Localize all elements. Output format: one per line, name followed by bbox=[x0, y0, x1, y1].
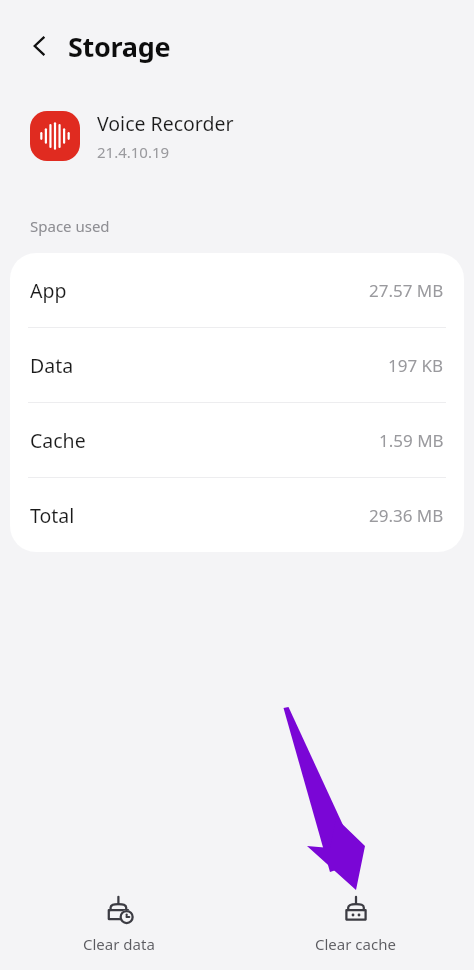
button[interactable]: Back bbox=[18, 24, 62, 68]
button[interactable]: Clear cache bbox=[237, 887, 474, 962]
staticText: Voice Recorder bbox=[97, 110, 234, 137]
button[interactable]: Total bbox=[10, 478, 464, 552]
other: Clear cache bbox=[341, 895, 371, 925]
staticText: Data bbox=[30, 352, 74, 379]
staticText: Space used bbox=[30, 216, 110, 236]
button[interactable]: Cache bbox=[10, 403, 464, 477]
button[interactable]: Data bbox=[10, 328, 464, 402]
staticText: 21.4.10.19 bbox=[97, 142, 170, 162]
staticText: 1.59 MB bbox=[379, 429, 444, 452]
other: Clear data bbox=[104, 895, 134, 925]
staticText: 27.57 MB bbox=[369, 279, 444, 302]
staticText: Clear cache bbox=[315, 934, 396, 954]
staticText: Total bbox=[30, 502, 75, 529]
staticText: Storage bbox=[68, 28, 171, 65]
staticText: App bbox=[30, 277, 67, 304]
button[interactable]: App bbox=[10, 253, 464, 327]
staticText: 197 KB bbox=[388, 354, 444, 377]
staticText: Cache bbox=[30, 427, 86, 454]
button[interactable]: Clear data bbox=[0, 887, 237, 962]
staticText: Clear data bbox=[83, 934, 155, 954]
staticText: 29.36 MB bbox=[369, 504, 444, 527]
